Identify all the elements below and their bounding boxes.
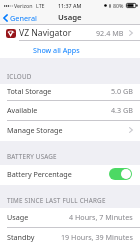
staticText: Usage bbox=[58, 12, 82, 23]
staticText: LTE bbox=[36, 2, 45, 9]
button[interactable]: Show all Apps bbox=[0, 41, 140, 58]
staticText: 80% bbox=[113, 2, 124, 9]
staticText: BATTERY USAGE bbox=[7, 152, 57, 161]
staticText: 92.4 MB bbox=[96, 28, 124, 38]
staticText: TIME SINCE LAST FULL CHARGE bbox=[7, 196, 106, 205]
staticText: General bbox=[10, 13, 37, 23]
staticText: ICLOUD bbox=[7, 72, 32, 81]
staticText: VZ Navigator bbox=[19, 27, 72, 39]
button[interactable]: VZ Navigator bbox=[0, 25, 140, 41]
button[interactable]: General bbox=[3, 13, 37, 23]
button[interactable]: Battery Percentage bbox=[0, 165, 140, 185]
staticText: Usage bbox=[7, 212, 29, 222]
staticText: 19 Hours, 39 Minutes bbox=[61, 232, 133, 242]
staticText: 5.0 GB bbox=[111, 86, 133, 96]
button[interactable]: Usage bbox=[0, 208, 140, 228]
button[interactable]: Battery Percentage toggle bbox=[109, 168, 132, 180]
staticText: 11:37 AM bbox=[58, 2, 82, 9]
staticText: Total Storage bbox=[7, 86, 52, 96]
staticText: 4 Hours, 7 Minutes bbox=[69, 212, 133, 222]
staticText: Available bbox=[7, 105, 38, 115]
button[interactable]: Available bbox=[0, 101, 140, 121]
staticText: Show all Apps bbox=[33, 45, 80, 55]
staticText: Battery Percentage bbox=[7, 169, 72, 179]
button[interactable]: Standby bbox=[0, 228, 140, 248]
staticText: Standby bbox=[7, 232, 35, 242]
staticText: Verizon bbox=[14, 2, 33, 9]
button[interactable]: Total Storage bbox=[0, 84, 140, 101]
staticText: 4.3 GB bbox=[111, 105, 133, 115]
button[interactable]: Manage Storage bbox=[0, 121, 140, 141]
staticText: Manage Storage bbox=[7, 125, 63, 135]
